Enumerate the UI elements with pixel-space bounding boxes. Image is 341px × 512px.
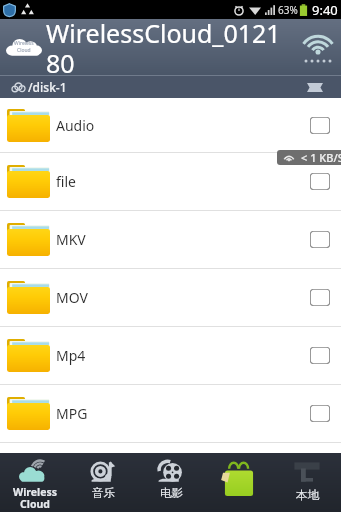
button[interactable]: 电影	[137, 453, 205, 512]
button[interactable]: Select file	[310, 173, 330, 190]
staticText: Mp4	[56, 346, 310, 365]
button[interactable]: Zhi store	[205, 453, 273, 512]
button[interactable]: Mp4	[0, 327, 341, 384]
button[interactable]: 本地	[273, 453, 341, 512]
staticText: Wireless	[14, 40, 34, 47]
staticText: 电影	[160, 486, 183, 500]
staticText: 80	[46, 46, 75, 80]
staticText: WirelessCloud_0121	[46, 16, 281, 50]
button[interactable]: Select MKV	[310, 231, 330, 248]
button[interactable]: MPG	[0, 385, 341, 442]
button[interactable]: Wireless Cloud	[0, 453, 69, 512]
button[interactable]: MOV	[0, 269, 341, 326]
button[interactable]: WiFi signal	[301, 31, 335, 63]
staticText: 本地	[296, 488, 319, 502]
staticText: 音乐	[92, 486, 115, 500]
staticText: /disk-1	[28, 79, 67, 95]
staticText: file	[56, 172, 310, 191]
button[interactable]: file	[0, 153, 341, 210]
staticText: MOV	[56, 288, 310, 307]
staticText: Cloud	[17, 47, 31, 54]
button[interactable]: MKV	[0, 211, 341, 268]
button[interactable]: Select Mp4	[310, 347, 330, 364]
staticText: < 1 KB/S	[301, 150, 341, 165]
staticText: 63%	[278, 3, 298, 17]
button[interactable]: Audio	[0, 98, 341, 152]
button[interactable]: Select MOV	[310, 289, 330, 306]
button[interactable]: 音乐	[69, 453, 137, 512]
button[interactable]: Select MPG	[310, 405, 330, 422]
staticText: MPG	[56, 404, 310, 423]
staticText: 9:40	[312, 1, 338, 19]
staticText: Wireless Cloud	[13, 485, 57, 511]
button[interactable]: Select Audio	[310, 117, 330, 134]
button[interactable]: Storage	[307, 83, 323, 92]
staticText: Audio	[56, 116, 310, 135]
staticText: MKV	[56, 230, 310, 249]
